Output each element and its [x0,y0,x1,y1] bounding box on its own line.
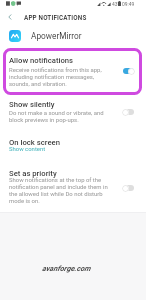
staticText: On lock screen [9,138,60,147]
staticText: Show content [9,145,46,152]
button[interactable]: On lock screen [0,132,146,160]
staticText: Show silently [9,100,55,109]
staticText: 43% [112,1,122,7]
staticText: Do not make a sound or vibrate, and bloc… [9,109,104,123]
button[interactable]: Navigate up [0,9,20,25]
button[interactable]: ApowerMirror [0,25,146,47]
staticText: ApowerMirror [31,31,82,41]
staticText: Show notifications at the top of the not… [9,176,108,204]
button[interactable]: Show silently [0,96,146,128]
button[interactable]: Switch off [122,108,135,116]
button[interactable]: Switch off [122,184,135,192]
button[interactable]: Switch on [122,67,135,75]
staticText: avanforge.com [42,264,91,273]
staticText: Allow notifications [9,56,74,65]
staticText: 09:49 [122,1,135,7]
staticText: Set as priority [9,169,57,178]
button[interactable]: Allow notifications [0,47,146,94]
staticText: Receive notifications from this app, inc… [9,66,102,87]
button[interactable]: Set as priority [0,164,146,212]
staticText: APP NOTIFICATIONS [24,14,87,21]
